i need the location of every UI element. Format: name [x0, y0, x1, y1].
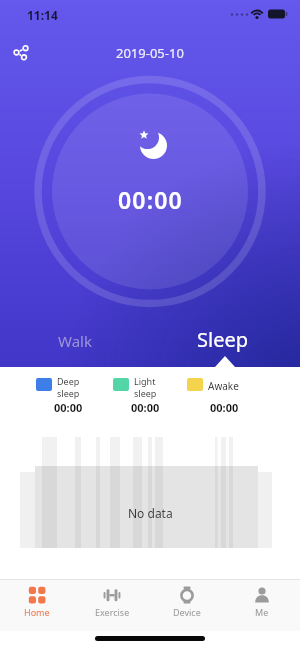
staticText: Awake: [208, 379, 239, 393]
button[interactable]: Me: [226, 579, 298, 631]
button[interactable]: [9, 41, 31, 63]
staticText: Deep: [57, 375, 80, 387]
staticText: Me: [255, 606, 269, 618]
staticText: 11:14: [27, 7, 58, 23]
staticText: 00:00: [118, 184, 183, 215]
staticText: sleep: [134, 387, 157, 399]
button[interactable]: Exercise: [76, 579, 148, 631]
staticText: Walk: [58, 331, 92, 351]
staticText: 00:00: [54, 400, 83, 415]
staticText: 00:00: [131, 400, 160, 415]
staticText: Exercise: [95, 606, 130, 618]
button[interactable]: Home: [1, 579, 73, 631]
staticText: 00:00: [210, 400, 239, 415]
staticText: 2019-05-10: [116, 44, 184, 62]
staticText: Device: [173, 606, 201, 618]
staticText: Sleep: [197, 326, 248, 353]
staticText: Light: [134, 375, 156, 387]
button[interactable]: Device: [151, 579, 223, 631]
button[interactable]: Sleep: [190, 322, 254, 356]
button[interactable]: Walk: [45, 326, 105, 356]
staticText: sleep: [57, 387, 80, 399]
staticText: No data: [128, 505, 173, 521]
staticText: Home: [24, 606, 50, 618]
